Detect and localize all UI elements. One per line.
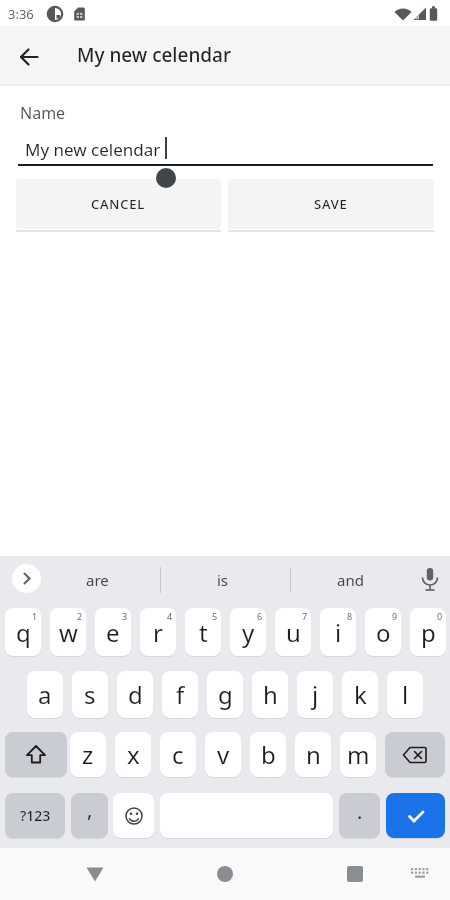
button[interactable] bbox=[5, 732, 67, 777]
button[interactable]: c bbox=[160, 732, 196, 777]
button[interactable]: , bbox=[71, 793, 108, 838]
button[interactable]: b bbox=[250, 732, 286, 777]
button[interactable]: are bbox=[52, 564, 142, 596]
button[interactable]: h bbox=[252, 671, 288, 718]
staticText: p bbox=[421, 616, 436, 649]
button[interactable] bbox=[402, 858, 438, 890]
button[interactable]: f bbox=[162, 671, 198, 718]
staticText: 3 bbox=[122, 610, 128, 622]
staticText: 9 bbox=[392, 610, 398, 622]
button[interactable]: l bbox=[387, 671, 423, 718]
staticText: and bbox=[337, 570, 364, 590]
staticText: q bbox=[16, 616, 31, 649]
button[interactable] bbox=[75, 854, 115, 894]
button[interactable]: y bbox=[230, 608, 266, 656]
button[interactable]: is bbox=[178, 564, 268, 596]
button[interactable]: v bbox=[205, 732, 241, 777]
button[interactable]: j bbox=[297, 671, 333, 718]
staticText: e bbox=[106, 616, 120, 649]
staticText: v bbox=[217, 738, 230, 771]
staticText: c bbox=[172, 738, 184, 771]
button[interactable]: q bbox=[5, 608, 41, 656]
button[interactable]: a bbox=[27, 671, 63, 718]
button[interactable]: z bbox=[70, 732, 106, 777]
staticText: u bbox=[286, 616, 301, 649]
staticText: CANCEL bbox=[91, 195, 146, 213]
button[interactable]: t bbox=[185, 608, 221, 656]
staticText: i bbox=[335, 616, 342, 649]
staticText: w bbox=[59, 616, 78, 649]
button[interactable]: r bbox=[140, 608, 176, 656]
button[interactable] bbox=[385, 732, 445, 777]
staticText: 0 bbox=[437, 610, 443, 622]
staticText: , bbox=[87, 796, 93, 823]
button[interactable]: SAVE bbox=[228, 179, 434, 229]
staticText: y bbox=[242, 616, 255, 649]
staticText: Name bbox=[20, 102, 66, 124]
button[interactable] bbox=[205, 854, 245, 894]
button[interactable]: . bbox=[339, 793, 380, 838]
button[interactable]: u bbox=[275, 608, 311, 656]
button[interactable]: n bbox=[295, 732, 331, 777]
staticText: 6 bbox=[257, 610, 263, 622]
button[interactable] bbox=[12, 40, 46, 74]
staticText: r bbox=[153, 616, 163, 649]
staticText: m bbox=[347, 738, 370, 771]
staticText: 4 bbox=[167, 610, 173, 622]
staticText: 5 bbox=[212, 610, 218, 622]
staticText: ?123 bbox=[20, 806, 51, 825]
staticText: 1 bbox=[32, 610, 38, 622]
staticText: 3:36 bbox=[8, 5, 34, 23]
button[interactable] bbox=[386, 793, 445, 838]
staticText: k bbox=[354, 678, 367, 711]
staticText: g bbox=[218, 678, 233, 711]
staticText: h bbox=[263, 678, 278, 711]
button[interactable]: o bbox=[365, 608, 401, 656]
staticText: o bbox=[376, 616, 391, 649]
staticText: a bbox=[38, 678, 52, 711]
button[interactable]: w bbox=[50, 608, 86, 656]
button[interactable]: s bbox=[72, 671, 108, 718]
staticText: d bbox=[128, 678, 143, 711]
button[interactable]: g bbox=[207, 671, 243, 718]
staticText: n bbox=[306, 738, 321, 771]
button[interactable]: ?123 bbox=[5, 793, 65, 838]
button[interactable]: d bbox=[117, 671, 153, 718]
staticText: l bbox=[402, 678, 409, 711]
button[interactable] bbox=[113, 793, 154, 838]
button[interactable]: e bbox=[95, 608, 131, 656]
staticText: x bbox=[127, 738, 140, 771]
staticText: t bbox=[199, 616, 208, 649]
staticText: 8 bbox=[347, 610, 353, 622]
button[interactable]: CANCEL bbox=[16, 179, 221, 229]
button[interactable] bbox=[12, 564, 41, 593]
staticText: f bbox=[176, 678, 185, 711]
staticText: My new celendar bbox=[25, 138, 161, 161]
staticText: 2 bbox=[77, 610, 83, 622]
staticText: j bbox=[312, 678, 319, 711]
staticText: b bbox=[261, 738, 276, 771]
button[interactable]: k bbox=[342, 671, 378, 718]
button[interactable]: m bbox=[340, 732, 376, 777]
staticText: are bbox=[86, 570, 109, 590]
button[interactable]: x bbox=[115, 732, 151, 777]
button[interactable] bbox=[414, 564, 446, 596]
staticText: 7 bbox=[302, 610, 308, 622]
button[interactable]: p bbox=[410, 608, 446, 656]
staticText: My new celendar bbox=[77, 42, 231, 68]
staticText: SAVE bbox=[314, 195, 348, 213]
staticText: s bbox=[84, 678, 96, 711]
staticText: z bbox=[82, 738, 94, 771]
button[interactable]: i bbox=[320, 608, 356, 656]
staticText: . bbox=[357, 798, 363, 825]
button[interactable]: and bbox=[305, 564, 395, 596]
button[interactable] bbox=[335, 854, 375, 894]
staticText: is bbox=[217, 570, 229, 590]
